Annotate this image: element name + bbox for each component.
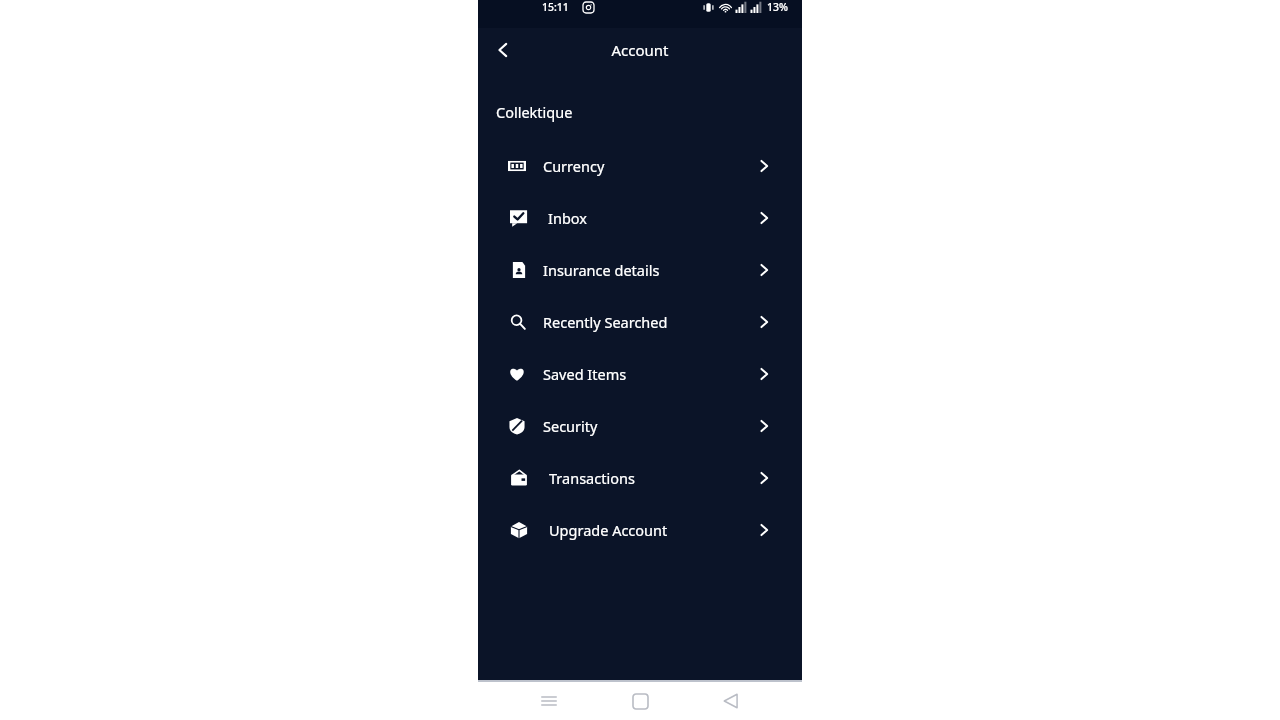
staticText: Inbox xyxy=(548,208,587,228)
staticText: 13% xyxy=(767,0,788,14)
staticText: Transactions xyxy=(549,468,635,488)
staticText: Recently Searched xyxy=(543,312,668,332)
staticText: 15:11 xyxy=(542,0,569,14)
button[interactable]: Security xyxy=(478,400,802,452)
button[interactable]: Recent apps xyxy=(529,682,569,720)
staticText: Insurance details xyxy=(543,260,660,280)
staticText: Collektique xyxy=(496,102,573,122)
button[interactable]: Home xyxy=(620,682,660,720)
button[interactable]: Inbox xyxy=(478,192,802,244)
button[interactable]: Insurance details xyxy=(478,244,802,296)
staticText: Saved Items xyxy=(543,364,627,384)
button[interactable]: Recently Searched xyxy=(478,296,802,348)
button[interactable]: Currency xyxy=(478,140,802,192)
staticText: Upgrade Account xyxy=(549,520,668,540)
button[interactable]: Saved Items xyxy=(478,348,802,400)
staticText: Security xyxy=(543,416,598,436)
button[interactable]: Back xyxy=(486,33,520,67)
button[interactable]: Back xyxy=(711,682,751,720)
staticText: Currency xyxy=(543,156,605,176)
button[interactable]: Upgrade Account xyxy=(478,504,802,556)
staticText: Account xyxy=(611,40,669,60)
button[interactable]: Transactions xyxy=(478,452,802,504)
